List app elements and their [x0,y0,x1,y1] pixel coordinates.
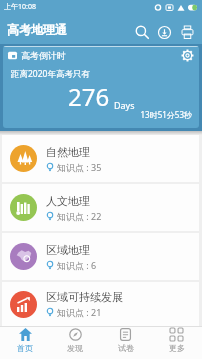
button[interactable]: 区域可持续发展 [2,282,199,326]
button[interactable] [135,25,149,39]
staticText: 区域地理 [46,243,90,257]
staticText: 人文地理 [46,194,90,208]
button[interactable]: 发现 [50,327,100,359]
staticText: 知识点 : 22 [57,210,102,222]
staticText: 首页 [17,343,33,353]
button[interactable]: 首页 [0,327,50,359]
staticText: 知识点 : 21 [57,306,102,318]
button[interactable] [181,26,194,39]
button[interactable]: 区域地理 [2,233,199,280]
staticText: 13时51分53秒 [8,109,192,120]
button[interactable]: 自然地理 [2,135,199,182]
staticText: 区域可持续发展 [46,290,123,304]
staticText: 276 [68,80,110,113]
button[interactable]: 试卷 [100,327,151,359]
button[interactable] [181,49,194,62]
staticText: 高考倒计时 [21,50,66,61]
staticText: 高考地理通 [7,22,67,37]
staticText: 试卷 [118,343,134,353]
staticText: 发现 [67,343,83,353]
button[interactable] [158,26,171,39]
staticText: 知识点 : 6 [57,259,97,271]
staticText: Days [114,99,135,111]
staticText: 上午10:08 [4,2,36,12]
staticText: 知识点 : 35 [57,161,102,173]
button[interactable]: 人文地理 [2,184,199,231]
staticText: 距离2020年高考只有 [11,68,90,80]
staticText: 自然地理 [46,145,90,159]
button[interactable]: 更多 [151,327,202,359]
staticText: 更多 [169,343,185,353]
